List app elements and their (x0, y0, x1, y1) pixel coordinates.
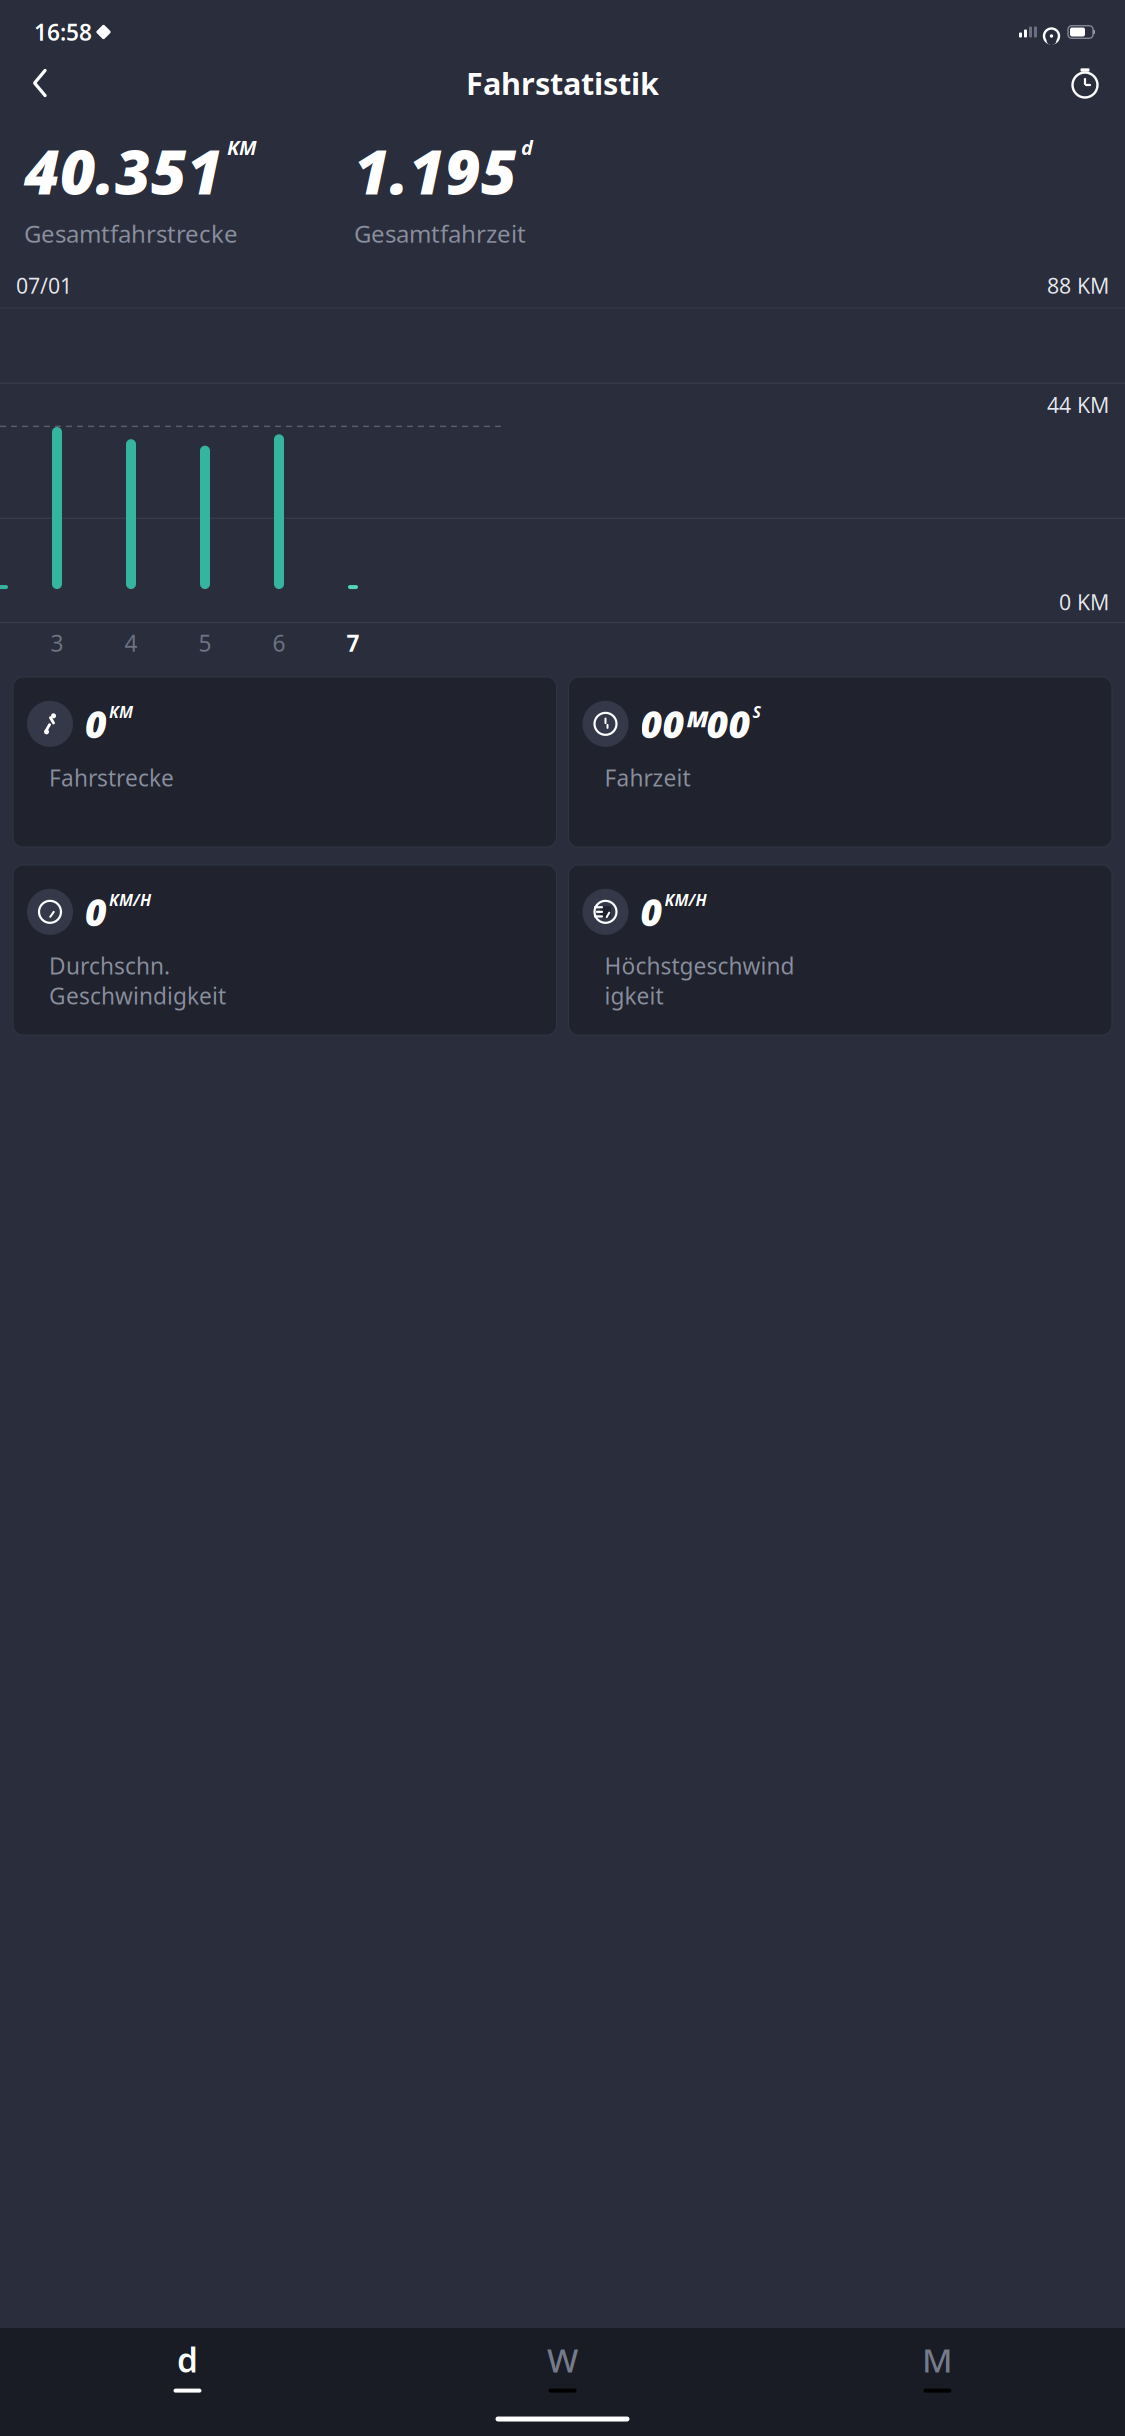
staticText: KM (227, 134, 257, 161)
staticText: 7 (346, 628, 359, 658)
staticText: 3 (50, 628, 63, 658)
staticText: 6 (272, 628, 285, 658)
staticText: 88 KM (1047, 271, 1109, 300)
staticText: Durchschn. (49, 951, 170, 981)
staticText: KM/H (109, 889, 151, 910)
button[interactable]: Timer (1057, 59, 1113, 107)
staticText: d (521, 134, 533, 161)
staticText: 40.351 (24, 130, 223, 211)
staticText: 0 (85, 887, 107, 937)
staticText: Gesamtfahrzeit (354, 217, 526, 249)
staticText: 4 (124, 628, 137, 658)
staticText: Gesamtfahrstrecke (24, 217, 238, 249)
staticText: 5 (198, 628, 211, 658)
button[interactable]: 00ᴹ00 (568, 677, 1112, 847)
staticText: 1.195 (354, 130, 517, 211)
staticText: igkeit (604, 981, 663, 1011)
button[interactable]: M (750, 2328, 1125, 2402)
button[interactable]: 0 (568, 865, 1112, 1035)
button[interactable]: Back (12, 59, 68, 107)
button[interactable]: W (375, 2328, 750, 2402)
staticText: M (922, 2337, 953, 2382)
staticText: Geschwindigkeit (49, 981, 226, 1011)
staticText: 0 (640, 887, 662, 937)
button[interactable]: 0 (13, 865, 556, 1035)
staticText: W (547, 2337, 578, 2382)
staticText: Höchstgeschwind (604, 951, 794, 981)
staticText: KM (109, 701, 133, 722)
staticText: 0 KM (1059, 588, 1109, 616)
staticText: 07/01 (16, 271, 72, 300)
staticText: S (752, 701, 760, 722)
button[interactable]: d (0, 2328, 375, 2402)
button[interactable]: 0 (13, 677, 556, 847)
staticText: d (177, 2337, 198, 2382)
staticText: 00ᴹ00 (640, 699, 750, 749)
staticText: 16:58 (34, 17, 92, 47)
staticText: 44 KM (1047, 390, 1109, 419)
staticText: Fahrzeit (604, 763, 690, 793)
staticText: KM/H (664, 889, 706, 910)
staticText: 0 (85, 699, 107, 749)
staticText: Fahrstatistik (466, 63, 659, 103)
staticText: Fahrstrecke (49, 763, 174, 793)
